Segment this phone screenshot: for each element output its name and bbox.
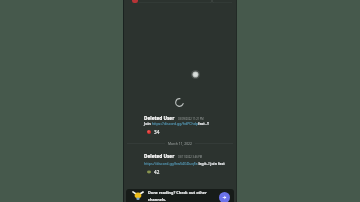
button[interactable]: 34: [147, 129, 160, 135]
staticText: March 11, 2022: [168, 141, 192, 145]
staticText: 03/11/2022 3:46 PM: [178, 155, 203, 159]
staticText: 03/09/2022 11:21 PM: [178, 117, 204, 121]
staticText: https://discord.gg/hw54GDuqFa legit..! j…: [144, 161, 225, 166]
button[interactable]: Deleted User: [144, 153, 241, 175]
staticText: 42: [154, 169, 160, 175]
staticText: Deleted User: [144, 115, 175, 121]
staticText: Deleted User: [144, 153, 175, 159]
staticText: Join https://discord.gg/hdPChdpfast..!!: [144, 121, 209, 126]
staticText: 34: [154, 129, 160, 135]
button[interactable]: Deleted User: [144, 115, 241, 135]
staticText: Done reading? Check out other channels.: [148, 190, 217, 202]
button[interactable]: 42: [147, 169, 160, 175]
button[interactable]: Done reading? Check out other channels.: [126, 189, 234, 202]
button[interactable]: Next channel: [219, 192, 230, 202]
